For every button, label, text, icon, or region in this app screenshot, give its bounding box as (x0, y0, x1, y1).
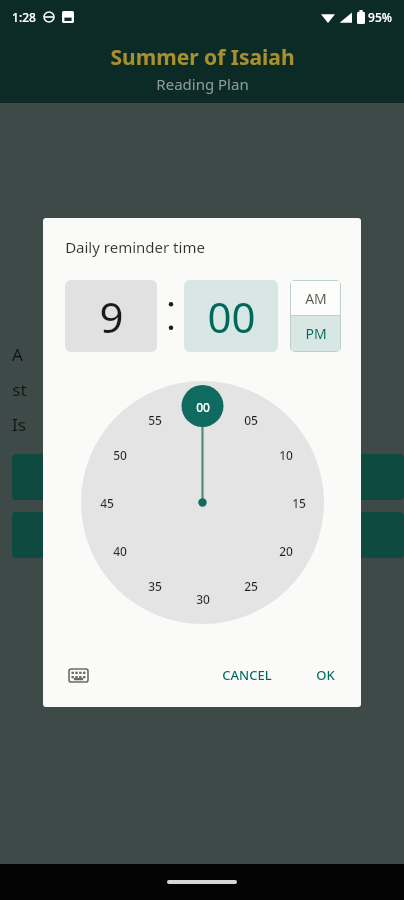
staticText: Daily reminder time (65, 237, 205, 257)
button[interactable] (12, 454, 404, 500)
staticText: 05 (244, 412, 258, 428)
staticText: PM (305, 324, 327, 343)
staticText: 30 (196, 591, 210, 607)
staticText: st (12, 378, 27, 401)
button[interactable]: PM (291, 316, 340, 351)
button[interactable]: AM (291, 281, 340, 315)
button[interactable]: CANCEL (212, 660, 282, 690)
button[interactable]: 9 (65, 280, 157, 352)
staticText: 40 (113, 543, 127, 559)
staticText: AM (305, 289, 327, 308)
staticText: OK (316, 666, 335, 684)
staticText: 50 (113, 447, 127, 463)
staticText: 00 (196, 399, 210, 415)
button[interactable] (12, 512, 404, 558)
staticText: 25 (244, 578, 258, 594)
staticText: 15 (292, 495, 306, 511)
staticText: Reading Plan (156, 74, 249, 94)
staticText: Is (12, 413, 26, 436)
staticText: Summer of Isaiah (110, 43, 295, 72)
staticText: A (12, 343, 23, 366)
staticText: 1:28 (12, 9, 36, 25)
staticText: 9 (99, 288, 124, 345)
staticText: 00 (207, 288, 256, 345)
staticText: CANCEL (222, 666, 272, 684)
button[interactable]: Switch to text input (63, 660, 93, 690)
button[interactable]: OK (306, 660, 345, 690)
staticText: 55 (148, 412, 162, 428)
staticText: 95% (368, 9, 392, 25)
staticText: 35 (148, 578, 162, 594)
staticText: 10 (279, 447, 293, 463)
button[interactable]: 00 (184, 280, 278, 352)
staticText: 45 (100, 495, 114, 511)
staticText: 20 (279, 543, 293, 559)
